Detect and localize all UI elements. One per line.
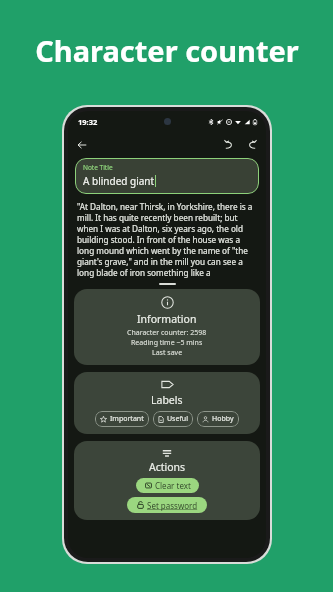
button[interactable]: Back [72,135,91,154]
staticText: Hobby [212,414,234,424]
staticText: "At Dalton, near Thirsk, in Yorkshire, t… [77,201,257,278]
button[interactable]: Important [95,411,149,427]
button[interactable]: Set password [127,497,207,513]
button[interactable]: Hobby [197,411,239,427]
staticText: Useful [167,414,188,424]
staticText: Last save [152,348,183,358]
button[interactable]: Information [74,289,260,365]
staticText: Labels [151,393,183,407]
button[interactable]: Clear text [136,478,199,493]
staticText: Information [137,312,197,326]
staticText: Clear text [155,480,191,491]
staticText: 19:32 [78,117,98,127]
staticText: Reading time ~5 mins [131,338,203,348]
staticText: Actions [149,460,186,474]
staticText: Important [110,414,144,424]
button[interactable]: Redo [243,135,262,154]
staticText: Character counter: 2598 [127,328,207,338]
staticText: Set password [147,500,198,511]
staticText: A blinded giant [83,174,155,188]
staticText: Character counter [35,31,299,70]
button[interactable]: Actions [74,441,260,520]
staticText: Note Title [83,163,113,172]
button[interactable]: Note Title [75,158,259,194]
button[interactable]: Useful [153,411,193,427]
button[interactable]: Labels [74,372,260,434]
button[interactable]: Undo [219,135,238,154]
